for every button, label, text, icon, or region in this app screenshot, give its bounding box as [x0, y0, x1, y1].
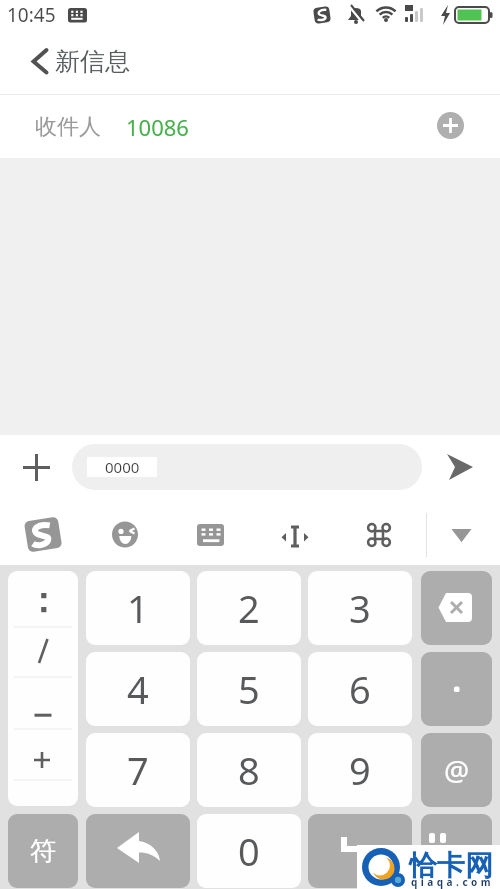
button[interactable] [21, 452, 52, 483]
staticText: 2 [238, 582, 260, 634]
button[interactable] [368, 524, 390, 546]
button[interactable] [86, 814, 190, 888]
staticText: 0000 [105, 457, 140, 477]
button[interactable] [308, 814, 412, 888]
staticText: qiaqa.com [411, 875, 495, 889]
button[interactable] [111, 521, 139, 549]
staticText: @ [444, 751, 470, 789]
button[interactable]: 6 [308, 652, 412, 726]
staticText: 10:45 [7, 2, 56, 28]
button[interactable]: 4 [86, 652, 190, 726]
staticText: 1 [127, 582, 149, 634]
staticText: 收件人 [35, 113, 101, 141]
staticText: 7 [127, 744, 149, 796]
staticText: 恰卡网 [409, 848, 493, 883]
staticText: 10086 [126, 112, 189, 142]
button[interactable]: 3 [308, 571, 412, 645]
button[interactable]: 0000 [72, 444, 422, 490]
button[interactable]: 恰卡网 [357, 845, 500, 889]
button[interactable] [197, 524, 224, 546]
button[interactable]: @ [421, 733, 492, 807]
staticText: 4 [127, 663, 149, 715]
staticText: 5 [238, 663, 260, 715]
button[interactable]: 1 [86, 571, 190, 645]
button[interactable]: 9 [308, 733, 412, 807]
staticText: 3 [349, 582, 371, 634]
button[interactable] [437, 112, 464, 139]
staticText: 符 [30, 835, 56, 868]
button[interactable] [440, 451, 478, 489]
button[interactable] [25, 518, 61, 551]
button[interactable] [421, 814, 492, 888]
button[interactable] [421, 652, 492, 726]
button[interactable]: 7 [86, 733, 190, 807]
staticText: 8 [238, 744, 260, 796]
button[interactable]: 0 [197, 814, 301, 888]
button[interactable]: 2 [197, 571, 301, 645]
button[interactable]: 符 [8, 814, 78, 888]
staticText: 0 [238, 825, 260, 877]
button[interactable] [280, 523, 310, 551]
button[interactable] [421, 571, 492, 645]
button[interactable] [448, 526, 476, 544]
staticText: 新信息 [55, 46, 130, 77]
button[interactable]: 8 [197, 733, 301, 807]
button[interactable]: 5 [197, 652, 301, 726]
staticText: 9 [349, 744, 371, 796]
staticText: 6 [349, 663, 371, 715]
button[interactable]: 新信息 [0, 30, 500, 94]
